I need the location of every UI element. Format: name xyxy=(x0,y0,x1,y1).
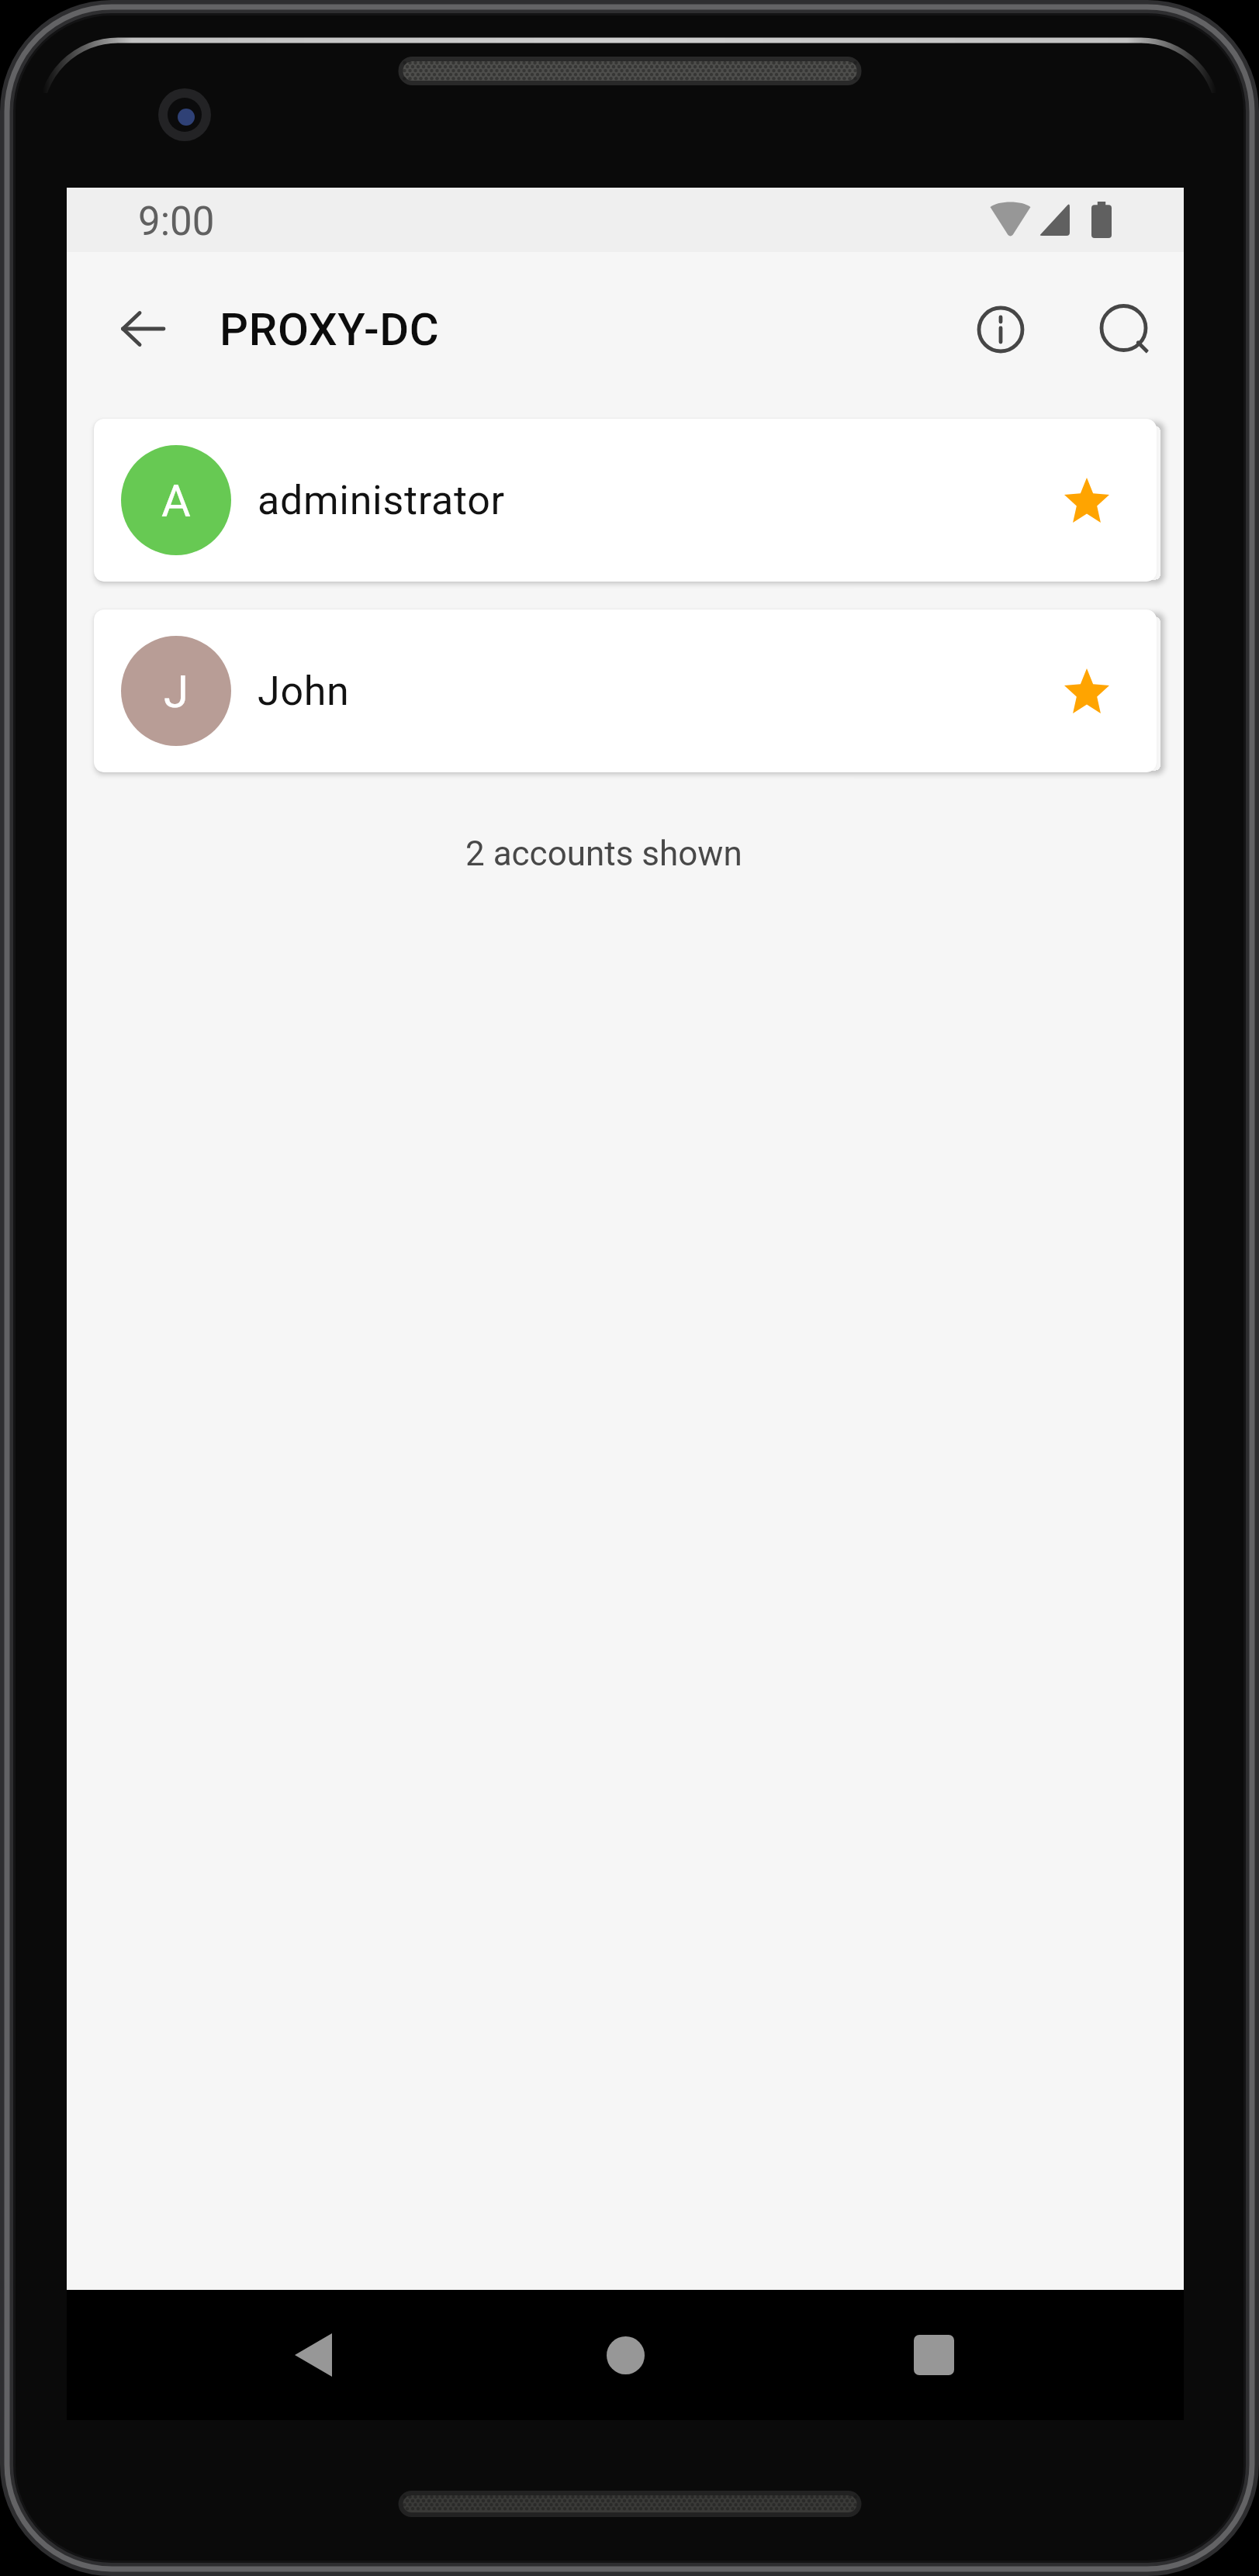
button[interactable]: Home xyxy=(579,2308,672,2402)
button[interactable]: Search xyxy=(1091,297,1157,362)
button[interactable]: J xyxy=(94,609,1157,772)
staticText: PROXY-DC xyxy=(220,303,440,356)
button[interactable]: Information xyxy=(968,297,1033,362)
staticText: 2 accounts shown xyxy=(465,834,742,874)
button[interactable]: Navigate up xyxy=(110,296,175,361)
staticText: A xyxy=(161,475,191,527)
button[interactable]: Favourite xyxy=(1053,658,1120,724)
button[interactable]: Back xyxy=(267,2308,360,2402)
button[interactable]: A xyxy=(94,419,1157,582)
button[interactable]: Recent apps xyxy=(887,2308,981,2402)
staticText: John xyxy=(258,668,350,715)
staticText: 9:00 xyxy=(138,199,215,245)
staticText: J xyxy=(164,665,189,718)
button[interactable]: Favourite xyxy=(1053,467,1120,534)
staticText: administrator xyxy=(258,477,505,524)
